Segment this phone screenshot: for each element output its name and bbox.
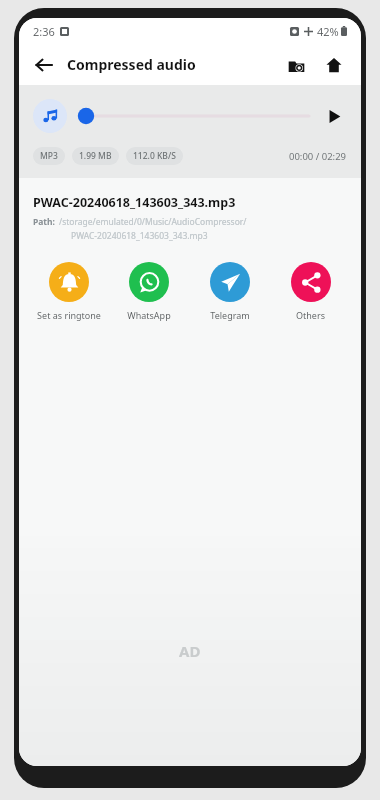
staticText: Others [296,309,325,321]
staticText: Set as ringtone [37,309,101,321]
button[interactable]: Others [270,260,351,323]
staticText: 2:36 [33,24,55,39]
staticText: /storage/emulated/0/Music/AudioCompresso… [59,216,247,228]
staticText: Path: [33,216,55,228]
staticText: Telegram [210,309,250,321]
button[interactable]: Play [321,103,347,129]
staticText: PWAC-20240618_143603_343.mp3 [33,194,236,211]
button[interactable]: WhatsApp [109,260,189,323]
button[interactable]: Set as ringtone [29,260,109,323]
staticText: 112.0 KB/S [133,150,176,162]
staticText: AD [179,641,201,661]
staticText: 1.99 MB [79,150,112,162]
button[interactable]: Saved folder [277,46,315,84]
staticText: MP3 [40,150,58,162]
staticText: WhatsApp [127,309,171,321]
staticText: 00:00 / 02:29 [289,150,347,163]
staticText: PWAC-20240618_143603_343.mp3 [71,230,208,242]
button[interactable]: Back [25,46,63,84]
staticText: 42% [317,24,339,39]
staticText: Compressed audio [67,55,196,74]
button[interactable]: Home [315,46,353,84]
button[interactable]: Telegram [189,260,270,323]
